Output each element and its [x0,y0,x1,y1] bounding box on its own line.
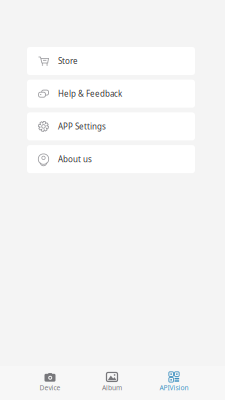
staticText: Album [102,383,122,392]
button[interactable]: About us [27,145,195,173]
button[interactable]: Album [81,366,143,400]
staticText: Device [39,383,60,392]
staticText: Store [58,56,78,66]
staticText: APP Settings [58,121,106,132]
staticText: Help & Feedback [58,88,122,99]
button[interactable]: Device [19,366,81,400]
button[interactable]: Help & Feedback [27,80,195,108]
button[interactable]: Store [27,47,195,75]
staticText: APIVision [159,383,188,392]
button[interactable]: APIVision [143,366,205,400]
button[interactable]: APP Settings [27,112,195,140]
staticText: About us [58,154,92,164]
